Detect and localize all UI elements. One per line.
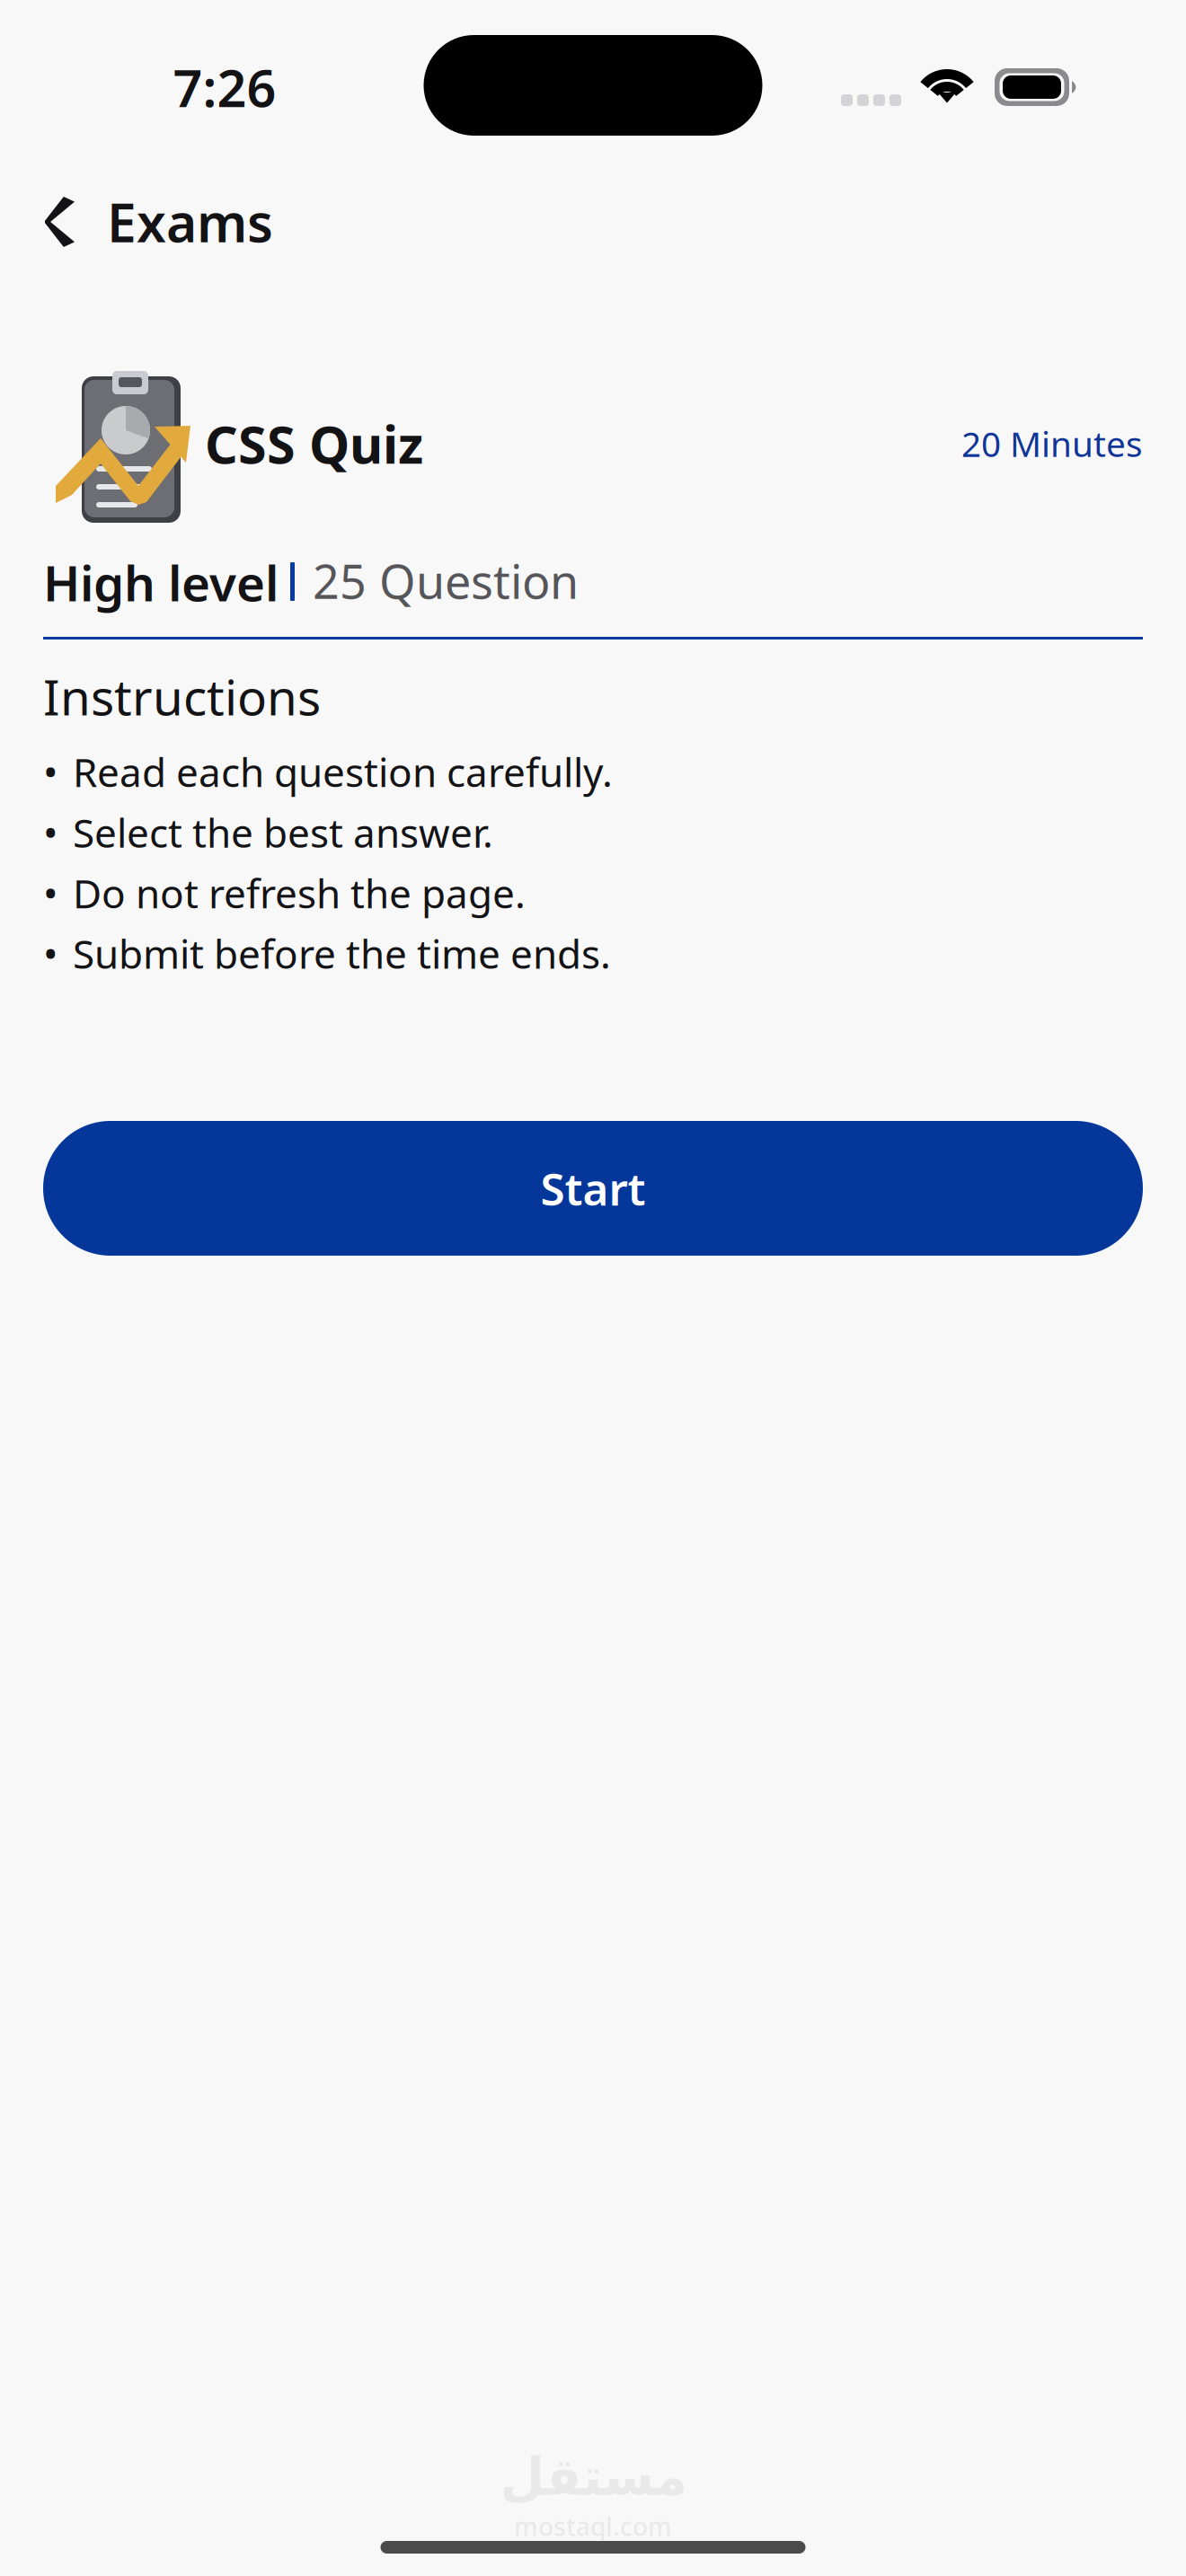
staticText: Read each question carefully. <box>73 745 613 798</box>
staticText: 7:26 <box>173 53 276 121</box>
button[interactable]: Exams <box>0 181 1186 262</box>
staticText: • <box>43 927 58 980</box>
staticText: Select the best answer. <box>73 806 493 858</box>
staticText: • <box>43 806 58 858</box>
staticText: CSS Quiz <box>205 410 423 478</box>
staticText: • <box>43 867 58 919</box>
staticText: 20 Minutes <box>961 420 1143 466</box>
staticText: mostaql.com <box>514 2510 672 2543</box>
staticText: Exams <box>107 187 273 257</box>
staticText: Instructions <box>43 664 321 729</box>
staticText: • <box>43 745 58 798</box>
staticText: High level <box>43 550 279 615</box>
staticText: Do not refresh the page. <box>73 867 526 919</box>
button[interactable]: Start <box>43 1121 1143 1256</box>
staticText: Start <box>540 1159 646 1218</box>
staticText: 25 Question <box>313 550 579 612</box>
staticText: Submit before the time ends. <box>73 927 611 980</box>
staticText: مستقل <box>500 2448 686 2506</box>
